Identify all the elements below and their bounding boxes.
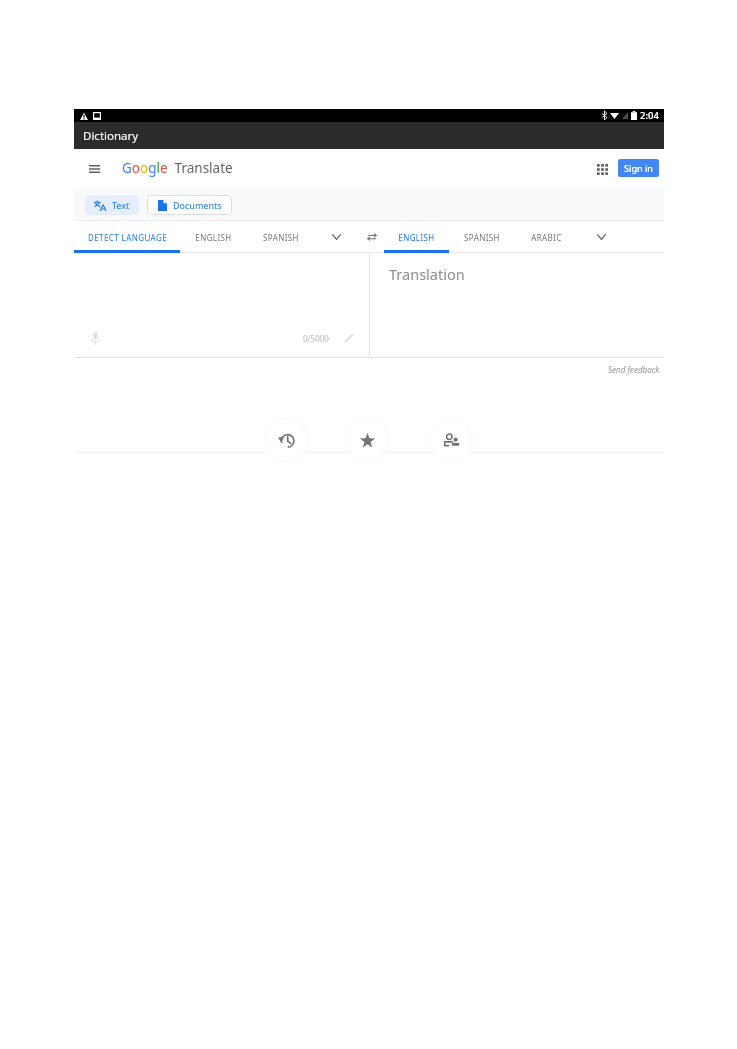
button[interactable]: Community: [429, 418, 473, 462]
staticText: SPANISH: [464, 232, 500, 243]
button[interactable]: Main menu: [84, 159, 104, 179]
staticText: Google Translate: [122, 159, 233, 177]
staticText: Translation: [389, 264, 465, 284]
button[interactable]: SPANISH: [247, 221, 314, 253]
button[interactable]: Saved: [345, 418, 389, 462]
button[interactable]: Text: [85, 195, 139, 215]
button[interactable]: History: [264, 418, 308, 462]
button[interactable]: Sign in: [618, 159, 659, 177]
staticText: DETECT LANGUAGE: [88, 232, 167, 243]
button[interactable]: Swap languages: [359, 221, 384, 253]
button[interactable]: Send feedback: [608, 364, 660, 375]
button[interactable]: SPANISH: [449, 221, 514, 253]
staticText: Dictionary: [83, 128, 139, 144]
staticText: Sign in: [624, 162, 654, 174]
staticText: Text: [112, 199, 130, 211]
button[interactable]: ENGLISH: [180, 221, 247, 253]
button[interactable]: Handwrite: [341, 331, 355, 345]
button[interactable]: DETECT LANGUAGE: [74, 221, 180, 253]
staticText: ENGLISH: [398, 232, 435, 243]
staticText: 2:04: [640, 109, 659, 122]
button[interactable]: Translate by speech: [87, 330, 103, 346]
staticText: SPANISH: [263, 232, 299, 243]
button[interactable]: ARABIC: [514, 221, 579, 253]
button[interactable]: Google apps: [592, 159, 612, 179]
button[interactable]: ENGLISH: [384, 221, 449, 253]
staticText: 0/5000: [303, 333, 329, 344]
button[interactable]: More source languages: [314, 221, 359, 253]
staticText: Documents: [173, 199, 222, 211]
button[interactable]: Documents: [147, 195, 232, 215]
button[interactable]: More target languages: [579, 221, 624, 253]
staticText: ARABIC: [531, 232, 562, 243]
staticText: ENGLISH: [195, 232, 232, 243]
